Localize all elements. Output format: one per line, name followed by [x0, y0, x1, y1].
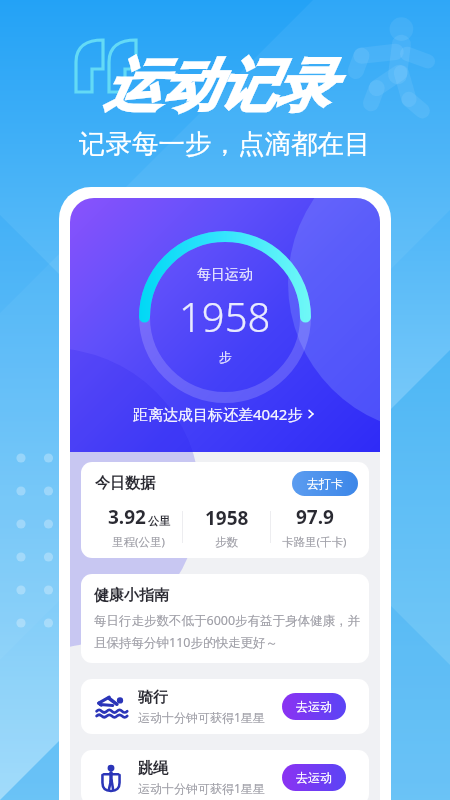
staticText: 里程(公里) [112, 534, 165, 550]
staticText: 97.9 [296, 504, 334, 530]
staticText: 去打卡 [307, 476, 343, 491]
staticText: 去运动 [296, 770, 332, 785]
staticText: 步数 [215, 535, 238, 549]
button[interactable]: 骑行 [81, 679, 369, 734]
button[interactable]: 去打卡 [292, 471, 358, 496]
button[interactable]: 距离达成目标还差4042步 [133, 404, 318, 424]
staticText: 1958 [205, 505, 249, 531]
button[interactable]: 跳绳 [81, 750, 369, 800]
staticText: 健康小指南 [94, 586, 169, 605]
button[interactable]: 去运动 [282, 693, 346, 720]
other: 骑行 [96, 692, 126, 722]
staticText: 运动十分钟可获得1星星 [138, 780, 265, 796]
staticText: 骑行 [138, 688, 168, 707]
staticText: 记录每一步，点滴都在目 [79, 127, 371, 160]
staticText: 距离达成目标还差4042步 [133, 404, 303, 424]
staticText: 步 [219, 349, 232, 365]
staticText: 运动十分钟可获得1星星 [138, 709, 265, 725]
button[interactable]: 健康小指南 [81, 574, 369, 663]
staticText: 跳绳 [138, 759, 168, 778]
staticText: 3.92 [108, 504, 146, 530]
other: 跳绳 [96, 763, 126, 793]
staticText: 每日行走步数不低于6000步有益于身体健康，并 且保持每分钟110步的快走更好～ [94, 612, 361, 651]
staticText: 运动记录 [104, 50, 332, 122]
staticText: 今日数据 [95, 474, 155, 493]
staticText: 卡路里(千卡) [282, 534, 347, 550]
button[interactable]: 去运动 [282, 764, 346, 791]
staticText: 每日运动 [197, 266, 253, 284]
staticText: 1958 [179, 289, 271, 343]
staticText: 去运动 [296, 699, 332, 714]
staticText: 公里 [148, 514, 170, 528]
button[interactable]: 今日数据 [81, 462, 369, 558]
